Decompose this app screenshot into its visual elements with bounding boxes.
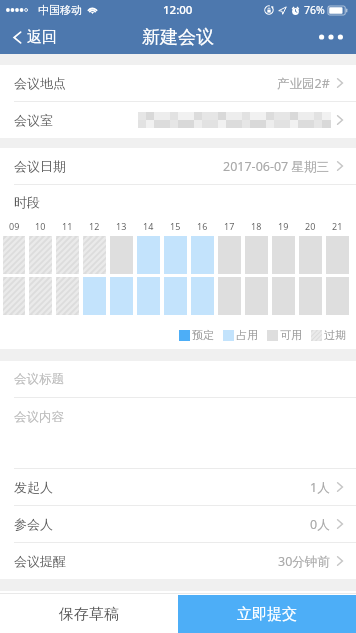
staticText: 时段 xyxy=(14,194,40,210)
staticText: 可用 xyxy=(280,328,302,342)
staticText: 占用 xyxy=(236,328,258,342)
staticText: 20 xyxy=(305,220,316,232)
staticText: 30分钟前 xyxy=(278,553,330,570)
staticText: 会议提醒 xyxy=(14,553,66,569)
button[interactable]: 发起人 xyxy=(0,469,356,505)
staticText: 保存草稿 xyxy=(59,605,119,624)
staticText: 会议标题 xyxy=(14,371,64,387)
staticText: 21 xyxy=(332,220,343,232)
button[interactable]: 会议室 xyxy=(0,102,356,138)
staticText: 17 xyxy=(224,220,235,232)
staticText: 参会人 xyxy=(14,516,53,532)
staticText: 09 xyxy=(9,220,20,232)
staticText: 发起人 xyxy=(14,479,53,495)
staticText: 会议日期 xyxy=(14,158,66,174)
button[interactable] xyxy=(83,236,106,274)
staticText: 预定 xyxy=(192,328,214,342)
staticText: 16 xyxy=(197,220,208,232)
staticText: 0人 xyxy=(310,516,330,533)
staticText: 13 xyxy=(116,220,127,232)
button[interactable]: 会议内容 xyxy=(0,398,356,468)
staticText: 会议地点 xyxy=(14,75,66,91)
staticText: 76% xyxy=(304,3,325,17)
staticText: 19 xyxy=(278,220,289,232)
staticText: 过期 xyxy=(324,328,346,342)
button[interactable]: 会议地点 xyxy=(0,65,356,101)
button[interactable] xyxy=(56,236,79,274)
staticText: 12:00 xyxy=(163,2,193,18)
staticText: 会议室 xyxy=(14,112,53,128)
button[interactable] xyxy=(29,277,52,315)
staticText: 2017-06-07 星期三 xyxy=(223,158,330,175)
staticText: 产业园2# xyxy=(277,75,330,92)
button[interactable] xyxy=(3,277,25,315)
staticText: 10 xyxy=(35,220,46,232)
button[interactable]: 会议提醒 xyxy=(0,543,356,579)
button[interactable]: 立即提交 xyxy=(178,595,356,633)
button[interactable]: 返回 xyxy=(0,20,67,54)
button[interactable]: 参会人 xyxy=(0,506,356,542)
button[interactable]: 会议标题 xyxy=(0,361,356,397)
staticText: 18 xyxy=(251,220,262,232)
button[interactable] xyxy=(29,236,52,274)
staticText: 1人 xyxy=(310,479,330,496)
staticText: 12 xyxy=(89,220,100,232)
button[interactable] xyxy=(56,277,79,315)
staticText: 11 xyxy=(62,220,73,232)
button[interactable]: 会议日期 xyxy=(0,148,356,184)
button[interactable] xyxy=(3,236,25,274)
staticText: 15 xyxy=(170,220,181,232)
button[interactable]: 保存草稿 xyxy=(0,595,178,633)
button[interactable]: More options xyxy=(306,20,356,54)
staticText: 14 xyxy=(143,220,154,232)
staticText: 立即提交 xyxy=(237,605,297,624)
staticText: 新建会议 xyxy=(142,26,214,49)
staticText: 中国移动 xyxy=(38,3,82,17)
staticText: 会议内容 xyxy=(14,409,64,425)
staticText: 返回 xyxy=(27,28,57,47)
